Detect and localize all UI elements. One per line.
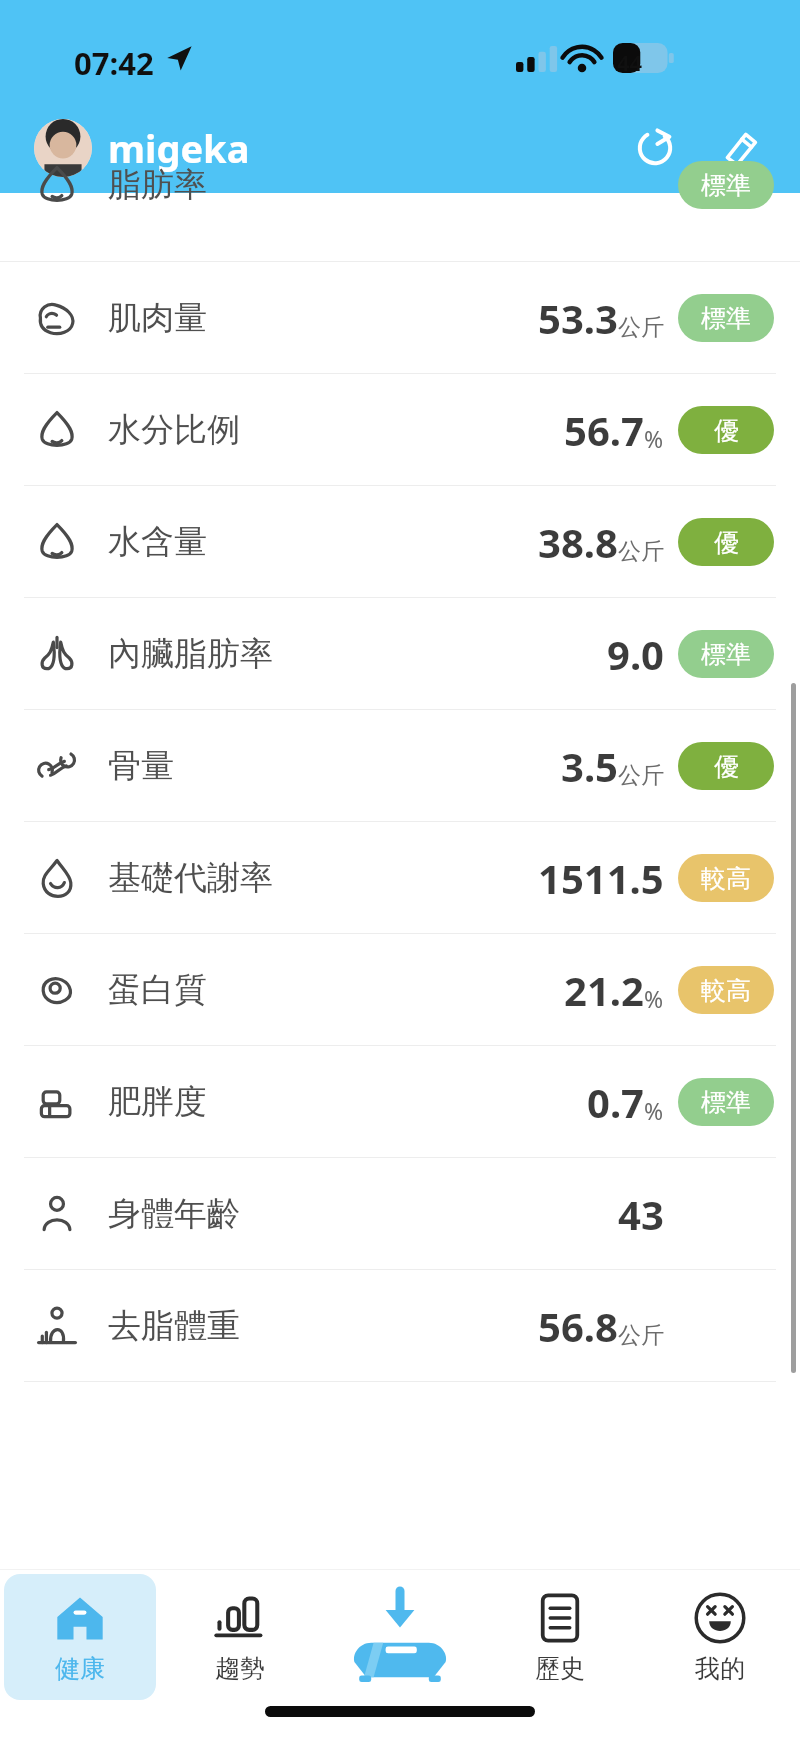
button[interactable]: 歷史 xyxy=(480,1573,640,1701)
button[interactable]: 骨量 xyxy=(0,710,800,822)
staticText: migeka xyxy=(108,122,250,174)
staticText: 53.3 xyxy=(538,291,618,345)
staticText: 肌肉量 xyxy=(108,297,207,339)
staticText: 基礎代謝率 xyxy=(108,857,273,899)
staticText: 內臟脂肪率 xyxy=(108,633,273,675)
staticText: 21.2 xyxy=(564,963,644,1017)
staticText: 標準 xyxy=(701,639,751,670)
staticText: 56.7 xyxy=(564,403,644,457)
button[interactable]: 趨勢 xyxy=(160,1573,320,1701)
button[interactable]: Refresh xyxy=(624,117,686,179)
button[interactable]: 肌肉量 xyxy=(0,262,800,374)
staticText: 歷史 xyxy=(535,1653,585,1684)
staticText: 健康 xyxy=(55,1653,105,1684)
button[interactable]: 身體年齡 xyxy=(0,1158,800,1270)
staticText: 公斤 xyxy=(618,761,664,790)
staticText: 公斤 xyxy=(618,1321,664,1350)
button[interactable]: Edit xyxy=(710,117,772,179)
staticText: 優 xyxy=(714,527,739,558)
staticText: 肥胖度 xyxy=(108,1081,207,1123)
staticText: 公斤 xyxy=(618,313,664,342)
staticText: 脂肪率 xyxy=(108,164,207,206)
staticText: 43 xyxy=(618,1187,664,1241)
staticText: % xyxy=(644,423,664,454)
button[interactable]: 肥胖度 xyxy=(0,1046,800,1158)
staticText: 標準 xyxy=(701,170,751,201)
button[interactable]: 去脂體重 xyxy=(0,1270,800,1382)
staticText: 1511.5 xyxy=(538,851,664,905)
staticText: % xyxy=(644,1095,664,1126)
staticText: 身體年齡 xyxy=(108,1193,240,1235)
button[interactable]: 水分比例 xyxy=(0,374,800,486)
staticText: 07:42 xyxy=(74,42,154,84)
button[interactable]: 脂肪率 xyxy=(0,150,800,219)
staticText: 44 xyxy=(617,47,643,77)
button[interactable]: Profile xyxy=(34,119,92,177)
staticText: 0.7 xyxy=(587,1075,644,1129)
button[interactable]: Measure xyxy=(320,1573,480,1701)
staticText: 56.8 xyxy=(538,1299,618,1353)
staticText: 較高 xyxy=(701,975,751,1006)
staticText: 優 xyxy=(714,751,739,782)
staticText: % xyxy=(644,983,664,1014)
staticText: 38.8 xyxy=(538,515,618,569)
button[interactable]: 基礎代謝率 xyxy=(0,822,800,934)
staticText: 3.5 xyxy=(561,739,618,793)
staticText: 水含量 xyxy=(108,521,207,563)
staticText: 去脂體重 xyxy=(108,1305,240,1347)
button[interactable]: 我的 xyxy=(640,1573,800,1701)
button[interactable]: 蛋白質 xyxy=(0,934,800,1046)
button[interactable]: 水含量 xyxy=(0,486,800,598)
staticText: 骨量 xyxy=(108,745,174,787)
staticText: 趨勢 xyxy=(215,1653,265,1684)
staticText: 我的 xyxy=(695,1653,745,1684)
staticText: 9.0 xyxy=(607,627,664,681)
button[interactable]: 內臟脂肪率 xyxy=(0,598,800,710)
staticText: 公斤 xyxy=(618,537,664,566)
staticText: 標準 xyxy=(701,1087,751,1118)
staticText: 優 xyxy=(714,415,739,446)
staticText: 水分比例 xyxy=(108,409,240,451)
button[interactable]: 健康 xyxy=(0,1573,160,1701)
staticText: 標準 xyxy=(701,303,751,334)
staticText: 較高 xyxy=(701,863,751,894)
staticText: 蛋白質 xyxy=(108,969,207,1011)
